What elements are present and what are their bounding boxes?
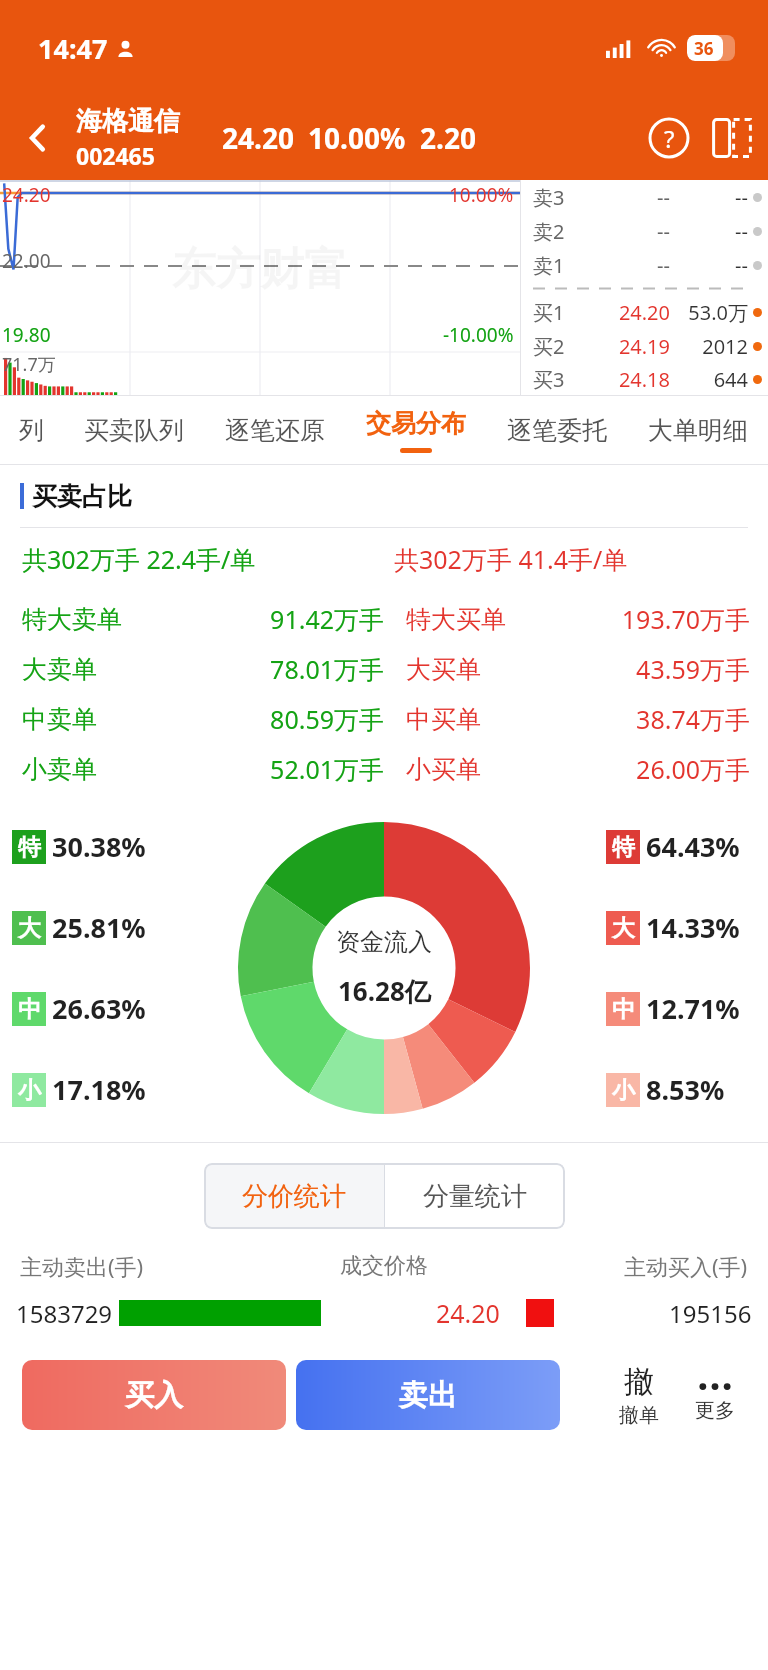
button[interactable]: 列 [0, 396, 63, 464]
staticText: 特大买单 [406, 604, 506, 635]
staticText: 分价统计 [242, 1180, 346, 1213]
staticText: 43.59万手 [481, 652, 750, 686]
staticText: -- [565, 252, 670, 279]
button[interactable]: 买入 [22, 1360, 286, 1430]
staticText: 大卖单 [22, 654, 97, 685]
staticText: 8.53% [646, 1071, 725, 1108]
button[interactable]: 买卖队列 [63, 396, 204, 464]
button[interactable]: 分量统计 [385, 1163, 565, 1229]
staticText: 撤单 [619, 1403, 659, 1428]
staticText: 交易分布 [366, 408, 466, 439]
staticText: 26.00万手 [481, 752, 750, 786]
staticText: 10.00% [308, 119, 406, 157]
staticText: 大 [612, 914, 635, 943]
button[interactable]: 1583729 [16, 1291, 752, 1335]
staticText: 小 [18, 1076, 41, 1105]
staticText: 64.43% [646, 828, 740, 865]
staticText: 24.19 [565, 333, 670, 360]
staticText: 分量统计 [423, 1180, 527, 1213]
staticText: 买3 [533, 366, 565, 393]
button[interactable]: 买2 [533, 329, 762, 363]
button[interactable]: 卖3 [533, 180, 762, 214]
staticText: 002465 [76, 140, 155, 171]
staticText: 共302万手 22.4手/单 [22, 542, 256, 576]
staticText: 53.0万 [672, 299, 748, 326]
button[interactable]: 卖2 [533, 214, 762, 248]
button[interactable]: 卖1 [533, 248, 762, 282]
staticText: 列 [19, 415, 44, 446]
staticText: 22.00 [2, 248, 51, 274]
staticText: 24.20 [565, 299, 670, 326]
staticText: -- [565, 218, 670, 245]
staticText: ? [664, 122, 675, 155]
staticText: -- [672, 184, 748, 211]
staticText: 特 [18, 833, 41, 862]
staticText: 特大卖单 [22, 604, 122, 635]
staticText: 小买单 [406, 754, 481, 785]
button[interactable]: Fullscreen [706, 107, 758, 169]
button[interactable]: 逐笔还原 [204, 396, 345, 464]
staticText: 买入 [125, 1377, 183, 1414]
staticText: 更多 [695, 1398, 735, 1423]
staticText: 买卖队列 [84, 415, 184, 446]
staticText: 2012 [672, 333, 748, 360]
staticText: 2.20 [420, 119, 476, 157]
staticText: 逐笔委托 [507, 415, 607, 446]
button[interactable]: 分价统计 [204, 1163, 384, 1229]
staticText: -- [672, 218, 748, 245]
button[interactable]: 买1 [533, 295, 762, 329]
staticText: -- [672, 252, 748, 279]
button[interactable]: 更多 [684, 1368, 746, 1423]
staticText: -10.00% [443, 322, 514, 348]
staticText: 71.7万 [2, 352, 56, 377]
button[interactable]: 交易分布 [345, 396, 486, 464]
staticText: 193.70万手 [506, 602, 750, 636]
staticText: 52.01万手 [97, 752, 384, 786]
staticText: 30.38% [52, 828, 146, 865]
staticText: 大买单 [406, 654, 481, 685]
button[interactable]: 卖出 [296, 1360, 560, 1430]
button[interactable]: 撤 [608, 1363, 670, 1428]
staticText: 主动卖出(手) [20, 1251, 144, 1281]
staticText: 逐笔还原 [225, 415, 325, 446]
staticText: 644 [672, 366, 748, 393]
button[interactable]: Back [0, 96, 76, 180]
staticText: 24.18 [565, 366, 670, 393]
button[interactable]: 逐笔委托 [486, 396, 627, 464]
staticText: 东方财富 [172, 242, 348, 297]
staticText: 海格通信 [76, 105, 180, 138]
button[interactable]: 买3 [533, 363, 762, 395]
staticText: 14:47 [38, 30, 108, 67]
staticText: 资金流入 [336, 927, 432, 957]
staticText: 买卖占比 [32, 481, 132, 512]
staticText: 36 [694, 37, 714, 60]
staticText: 卖3 [533, 184, 565, 211]
staticText: 78.01万手 [97, 652, 384, 686]
staticText: 中 [612, 995, 635, 1024]
staticText: 38.74万手 [481, 702, 750, 736]
button[interactable]: Help [638, 107, 700, 169]
staticText: 26.63% [52, 990, 146, 1027]
staticText: -- [565, 184, 670, 211]
staticText: 10.00% [449, 182, 514, 208]
staticText: 中买单 [406, 704, 481, 735]
staticText: 小卖单 [22, 754, 97, 785]
staticText: 卖2 [533, 218, 565, 245]
staticText: 16.28亿 [338, 973, 431, 1009]
button[interactable]: 大单明细 [627, 396, 768, 464]
staticText: 19.80 [2, 322, 51, 348]
staticText: 卖1 [533, 252, 565, 279]
staticText: 91.42万手 [122, 602, 384, 636]
staticText: 买1 [533, 299, 565, 326]
staticText: 卖出 [399, 1377, 457, 1414]
staticText: 中 [18, 995, 41, 1024]
staticText: 24.20 [222, 119, 294, 157]
staticText: 小 [612, 1076, 635, 1105]
staticText: 195156 [669, 1297, 752, 1330]
staticText: 25.81% [52, 909, 146, 946]
staticText: 主动买入(手) [624, 1251, 748, 1281]
staticText: 14.33% [646, 909, 740, 946]
staticText: 买2 [533, 333, 565, 360]
staticText: 12.71% [646, 990, 740, 1027]
staticText: 特 [612, 833, 635, 862]
